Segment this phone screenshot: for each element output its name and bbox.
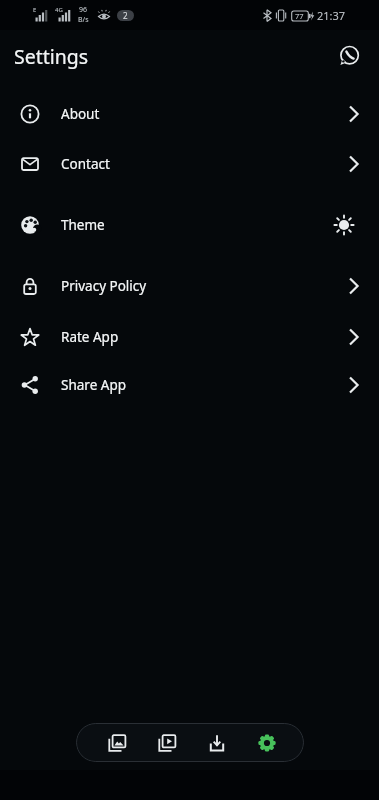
staticText: Contact	[61, 155, 110, 173]
button[interactable]: Share App	[0, 360, 379, 410]
staticText: 77	[295, 11, 304, 21]
staticText: 96	[79, 5, 88, 15]
button[interactable]: About	[0, 89, 379, 139]
staticText: E	[33, 6, 37, 14]
staticText: About	[61, 105, 100, 123]
staticText: 4G	[55, 6, 63, 14]
button[interactable]: Privacy Policy	[0, 261, 379, 311]
button[interactable]: Rate App	[0, 312, 379, 362]
button[interactable]	[202, 728, 232, 758]
staticText: B/s	[78, 15, 89, 25]
button[interactable]: Contact	[0, 139, 379, 189]
button[interactable]	[335, 42, 363, 70]
staticText: Privacy Policy	[61, 277, 147, 295]
staticText: Theme	[61, 216, 105, 234]
staticText: 21:37	[317, 8, 346, 23]
staticText: Share App	[61, 376, 126, 394]
staticText: Settings	[14, 43, 89, 70]
button[interactable]: Theme	[0, 200, 379, 250]
staticText: Rate App	[61, 328, 119, 346]
button[interactable]	[252, 728, 282, 758]
staticText: 2	[123, 10, 128, 21]
button[interactable]	[102, 728, 132, 758]
button[interactable]	[152, 728, 182, 758]
